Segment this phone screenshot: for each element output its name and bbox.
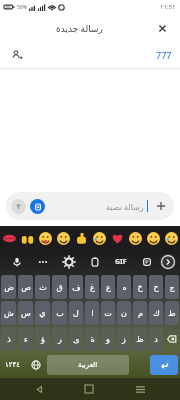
staticText: ص xyxy=(21,283,31,292)
staticText: د xyxy=(154,335,158,344)
button[interactable]: ن xyxy=(117,301,131,325)
staticText: ج xyxy=(169,283,175,292)
staticText: ل xyxy=(73,309,79,318)
button[interactable]: Expand xyxy=(11,199,26,214)
staticText: ذ xyxy=(7,335,11,344)
staticText: ث xyxy=(39,283,47,292)
button[interactable]: More options xyxy=(30,250,56,274)
staticText: ع xyxy=(106,283,111,292)
staticText: ض xyxy=(4,283,14,292)
staticText: ك xyxy=(153,309,160,318)
button[interactable]: م xyxy=(133,301,147,325)
button[interactable]: ه xyxy=(117,275,131,299)
staticText: و xyxy=(106,335,110,344)
staticText: رسالة نصية xyxy=(106,201,144,212)
button[interactable]: ف xyxy=(69,275,83,299)
staticText: ظ xyxy=(136,335,144,344)
button[interactable]: Emoji xyxy=(72,226,90,250)
button[interactable]: ا xyxy=(85,301,99,325)
staticText: ؤ xyxy=(41,335,45,344)
staticText: 777 xyxy=(156,49,172,61)
staticText: ١٢٣٤ xyxy=(5,361,21,369)
button[interactable]: خ xyxy=(133,275,147,299)
button[interactable]: Backspace xyxy=(165,327,179,351)
button[interactable]: ك xyxy=(149,301,163,325)
staticText: ف xyxy=(72,283,81,292)
button[interactable]: ز xyxy=(117,327,131,351)
staticText: ن xyxy=(121,309,127,318)
button[interactable]: العربية xyxy=(47,355,129,375)
button[interactable]: Close xyxy=(152,18,172,38)
button[interactable]: ذ xyxy=(1,327,16,351)
button[interactable]: ء xyxy=(18,327,33,351)
button[interactable]: ي xyxy=(35,301,50,325)
button[interactable]: Emoji xyxy=(90,226,108,250)
staticText: ي xyxy=(39,309,46,318)
staticText: العربية xyxy=(78,361,98,369)
button[interactable]: Emoji xyxy=(108,226,126,250)
button[interactable]: س xyxy=(18,301,33,325)
button[interactable]: SIM xyxy=(30,199,45,214)
staticText: ر xyxy=(58,335,62,344)
button[interactable]: Home xyxy=(78,378,100,400)
staticText: س xyxy=(21,309,31,318)
button[interactable]: ج xyxy=(165,275,179,299)
button[interactable]: ح xyxy=(149,275,163,299)
staticText: ء xyxy=(24,335,28,344)
button[interactable]: ت xyxy=(101,301,115,325)
button[interactable]: ض xyxy=(1,275,16,299)
button[interactable]: ع xyxy=(101,275,115,299)
button[interactable]: Clipboard xyxy=(82,250,108,274)
button[interactable]: ط xyxy=(165,301,179,325)
button[interactable]: Emoji xyxy=(18,226,36,250)
button[interactable]: Emoji xyxy=(0,226,18,250)
staticText: ه xyxy=(122,283,127,292)
button[interactable]: و xyxy=(101,327,115,351)
button[interactable]: ل xyxy=(69,301,83,325)
button[interactable]: Recent apps xyxy=(129,378,151,400)
staticText: رسالة جديدة xyxy=(56,22,103,34)
button[interactable]: ص xyxy=(18,275,33,299)
button[interactable]: Emoji xyxy=(144,226,162,250)
button[interactable]: غ xyxy=(85,275,99,299)
button[interactable]: ب xyxy=(52,301,67,325)
button[interactable]: Emoji xyxy=(54,226,72,250)
button[interactable]: Emoji xyxy=(162,226,180,250)
staticText: ز xyxy=(122,335,126,344)
staticText: ش xyxy=(4,309,14,318)
button[interactable]: Stickers xyxy=(134,250,160,274)
staticText: ة xyxy=(90,335,95,344)
button[interactable]: Emoji xyxy=(126,226,144,250)
button[interactable]: ة xyxy=(85,327,99,351)
button[interactable]: ؤ xyxy=(35,327,50,351)
button[interactable]: Settings xyxy=(56,250,82,274)
staticText: غ xyxy=(90,283,95,292)
button[interactable]: ى xyxy=(69,327,83,351)
button[interactable]: ث xyxy=(35,275,50,299)
button[interactable]: Add contact xyxy=(8,46,26,64)
staticText: م xyxy=(138,309,143,318)
button[interactable]: ١٢٣٤ xyxy=(0,352,26,378)
button[interactable]: Change language xyxy=(26,352,45,378)
staticText: GIF xyxy=(115,257,127,267)
staticText: ط xyxy=(168,309,176,318)
button[interactable]: ق xyxy=(52,275,67,299)
staticText: ح xyxy=(153,283,159,292)
button[interactable]: Add attachment xyxy=(152,197,170,215)
button[interactable]: د xyxy=(149,327,163,351)
button[interactable]: Back xyxy=(28,378,50,400)
staticText: ا xyxy=(91,309,94,318)
staticText: ب xyxy=(56,309,64,318)
staticText: ى xyxy=(73,335,80,344)
button[interactable]: ر xyxy=(52,327,67,351)
staticText: 50% xyxy=(17,4,27,11)
button[interactable]: GIF xyxy=(108,250,134,274)
button[interactable]: Enter xyxy=(150,355,178,375)
button[interactable]: Emoji xyxy=(36,226,54,250)
button[interactable]: ش xyxy=(1,301,16,325)
button[interactable]: ظ xyxy=(133,327,147,351)
staticText: ت xyxy=(104,309,112,318)
button[interactable]: Voice input xyxy=(4,250,30,274)
button[interactable]: Expand toolbar xyxy=(160,254,176,270)
staticText: خ xyxy=(137,283,143,292)
